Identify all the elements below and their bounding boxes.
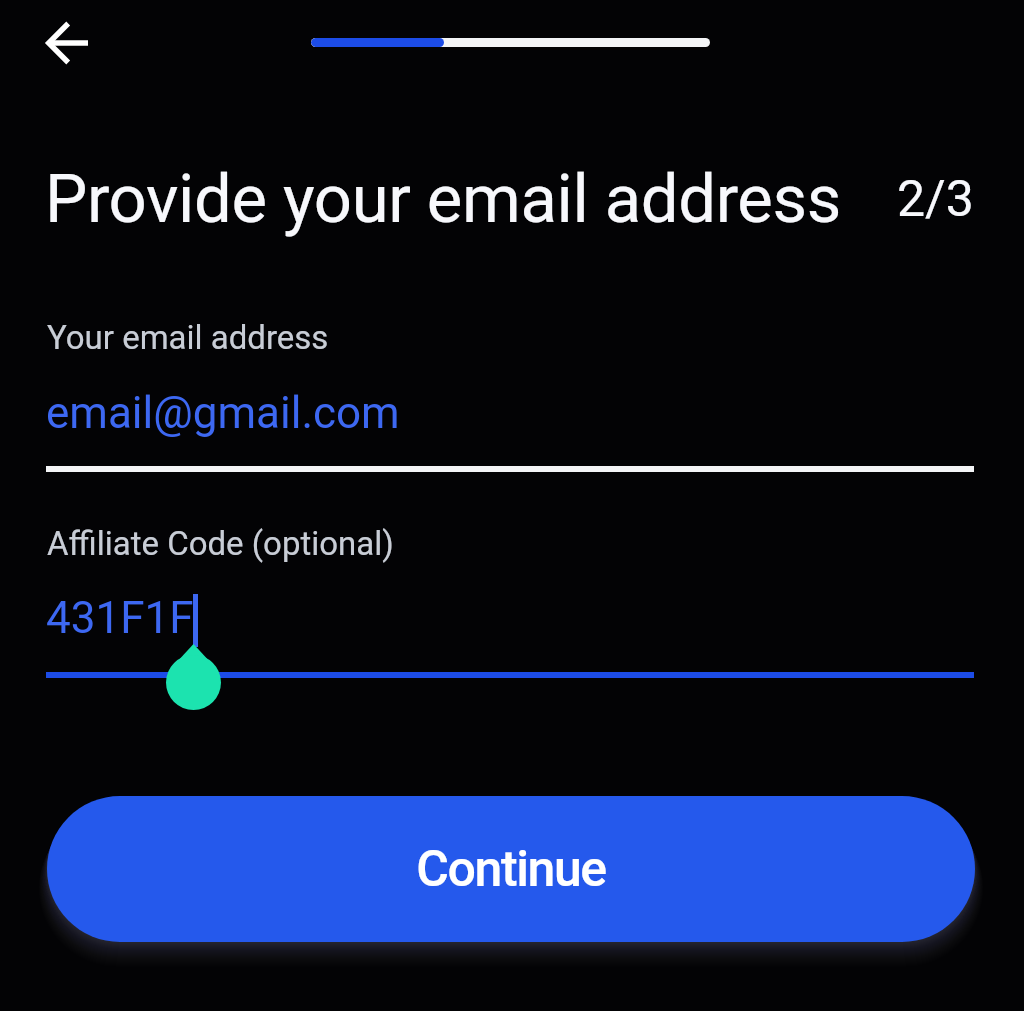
staticText: Your email address — [47, 318, 329, 357]
button[interactable]: Affiliate Code (optional) — [46, 506, 974, 678]
staticText: Provide your email address — [45, 160, 842, 239]
staticText: Affiliate Code (optional) — [47, 524, 394, 563]
staticText: 431F1F — [46, 592, 194, 644]
button[interactable]: Back — [26, 2, 108, 84]
staticText: email@gmail.com — [46, 387, 400, 439]
staticText: 2/3 — [897, 170, 974, 229]
staticText: Continue — [416, 840, 606, 899]
button[interactable]: Continue — [47, 796, 975, 942]
button[interactable]: Your email address — [46, 300, 974, 472]
